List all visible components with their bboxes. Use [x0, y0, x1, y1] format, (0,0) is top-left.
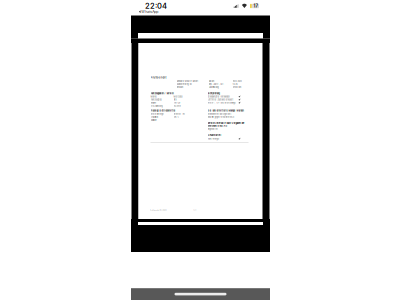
staticText: Bremse: 90 [173, 113, 184, 115]
staticText: Flüssige Betriebsmittel [150, 109, 175, 112]
staticText: Vito [173, 98, 176, 101]
staticText: Bauteile gegen Neuteil ersetzt [207, 116, 234, 118]
staticText: 22:04 [145, 1, 167, 10]
staticText: Beckum [176, 86, 183, 88]
staticText: WhatsApp [141, 9, 158, 14]
staticText: Prüfbericht [150, 76, 166, 79]
staticText: Ölqualität [150, 116, 158, 118]
staticText: Baujahr [150, 102, 156, 104]
staticText: Bei uns ermittelte Mängel wurden [207, 109, 243, 112]
staticText: Additive [150, 119, 156, 121]
staticText: Marke [150, 95, 156, 98]
staticText: Service-Intervalle nach Vorgaben der [207, 122, 244, 124]
staticText: Datum [208, 80, 214, 82]
staticText: Erstzulassung [150, 105, 162, 107]
staticText: Rep.-Auftr.-Nr. [208, 83, 224, 85]
staticText: keine Mängel [207, 138, 218, 140]
staticText: 10-05 [232, 83, 237, 85]
staticText: eingehalten [207, 128, 217, 130]
staticText: 180 CDI [173, 102, 180, 104]
staticText: 05.10.2023 [232, 80, 241, 82]
staticText: 37043 km [232, 86, 241, 88]
staticText: SAE 5 [173, 116, 178, 118]
staticText: 1/1 [193, 209, 196, 211]
staticText: Sudhoferweg 30 [176, 83, 191, 85]
staticText: Prüfbericht 4.1 / 2023 [149, 209, 166, 211]
staticText: Mercedes [173, 95, 182, 98]
staticText: Mercedes Benz AG [207, 125, 227, 127]
staticText: Sichtprüfung [207, 92, 219, 95]
staticText: 17 [253, 3, 257, 9]
staticText: Laufleistung [208, 86, 218, 88]
staticText: Gebhard Schulte GmbH [176, 80, 197, 82]
staticText: Stoßdämpfer vorhanden [207, 95, 229, 98]
staticText: Luftfilter Zustand erneuert [207, 98, 233, 101]
staticText: Motorölmenge [150, 113, 163, 115]
staticText: Motor-, Öl- und Bremsanlage [207, 102, 235, 104]
staticText: Fahrzeugdaten / Service [150, 92, 173, 95]
staticText: 05/2018 [173, 105, 180, 107]
staticText: Maßnahmen durchgeführt [207, 113, 231, 115]
staticText: Fahrzeugtyp [150, 98, 161, 101]
staticText: Gesamturteil [207, 134, 221, 136]
